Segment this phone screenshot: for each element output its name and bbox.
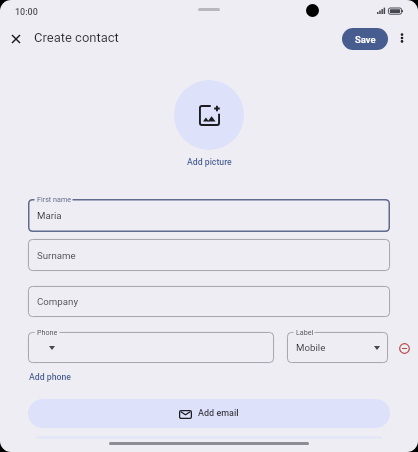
button[interactable]: Add phone (29, 372, 71, 382)
staticText: Maria (37, 210, 62, 221)
button[interactable]: Label (287, 332, 388, 363)
staticText: Label (296, 328, 314, 336)
staticText: Add phone (29, 372, 71, 382)
staticText: Company (37, 296, 78, 307)
button[interactable]: Company (28, 286, 390, 317)
button[interactable]: Phone (28, 332, 274, 363)
staticText: Mobile (296, 342, 326, 353)
button[interactable]: More options (392, 28, 412, 48)
staticText: First name (37, 195, 71, 203)
button[interactable]: Add picture (187, 157, 232, 167)
staticText: Add email (198, 408, 239, 419)
staticText: Create contact (34, 30, 119, 45)
button[interactable]: Close (5, 28, 27, 50)
button[interactable]: Add email (28, 399, 390, 428)
button[interactable]: Surname (28, 239, 390, 271)
button[interactable]: Save (342, 28, 388, 50)
staticText: Add picture (187, 157, 232, 167)
button[interactable]: Remove phone (396, 340, 412, 356)
staticText: Save (355, 34, 376, 45)
button[interactable]: First name (28, 199, 390, 232)
staticText: 10:00 (15, 7, 38, 18)
staticText: Phone (37, 328, 58, 336)
staticText: Surname (37, 250, 76, 261)
button[interactable]: Add picture (174, 80, 244, 150)
